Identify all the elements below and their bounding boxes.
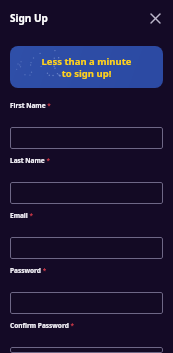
button[interactable]: Email [10, 237, 163, 259]
staticText: First Name * [10, 101, 51, 110]
button[interactable]: Confirm Password [10, 347, 163, 353]
staticText: Confirm Password * [10, 321, 75, 330]
button[interactable]: Last Name [10, 182, 163, 204]
staticText: Password * [10, 266, 47, 275]
button[interactable]: First Name [10, 127, 163, 149]
button[interactable]: Password [10, 292, 163, 314]
staticText: Less than a minute to sign up! [41, 55, 132, 80]
button[interactable]: Less than a minute to sign up! [10, 46, 163, 88]
staticText: Email * [10, 211, 33, 220]
staticText: Last Name * [10, 156, 50, 165]
button[interactable]: Close [145, 8, 165, 28]
staticText: Sign Up [10, 11, 48, 25]
